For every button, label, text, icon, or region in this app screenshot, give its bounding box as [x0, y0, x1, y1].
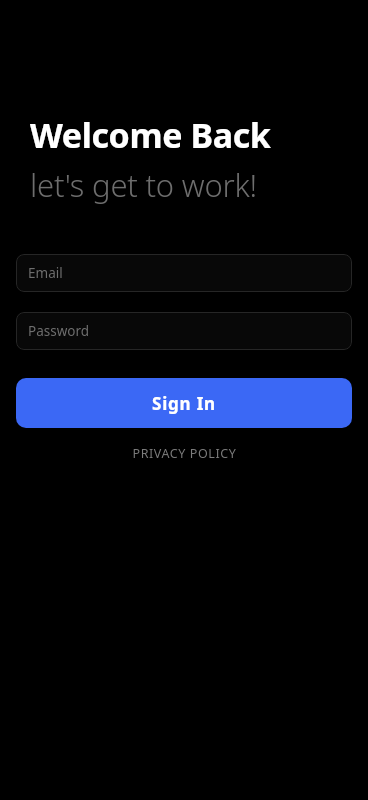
staticText: Password — [28, 322, 90, 340]
button[interactable]: Email — [16, 254, 352, 292]
button[interactable]: Password — [16, 312, 352, 350]
button[interactable]: PRIVACY POLICY — [124, 442, 245, 465]
staticText: PRIVACY POLICY — [132, 445, 237, 462]
staticText: Sign In — [152, 392, 216, 415]
staticText: Welcome Back — [30, 112, 271, 158]
button[interactable]: Sign In — [16, 378, 352, 428]
staticText: Email — [28, 264, 63, 282]
staticText: let's get to work! — [30, 164, 258, 206]
